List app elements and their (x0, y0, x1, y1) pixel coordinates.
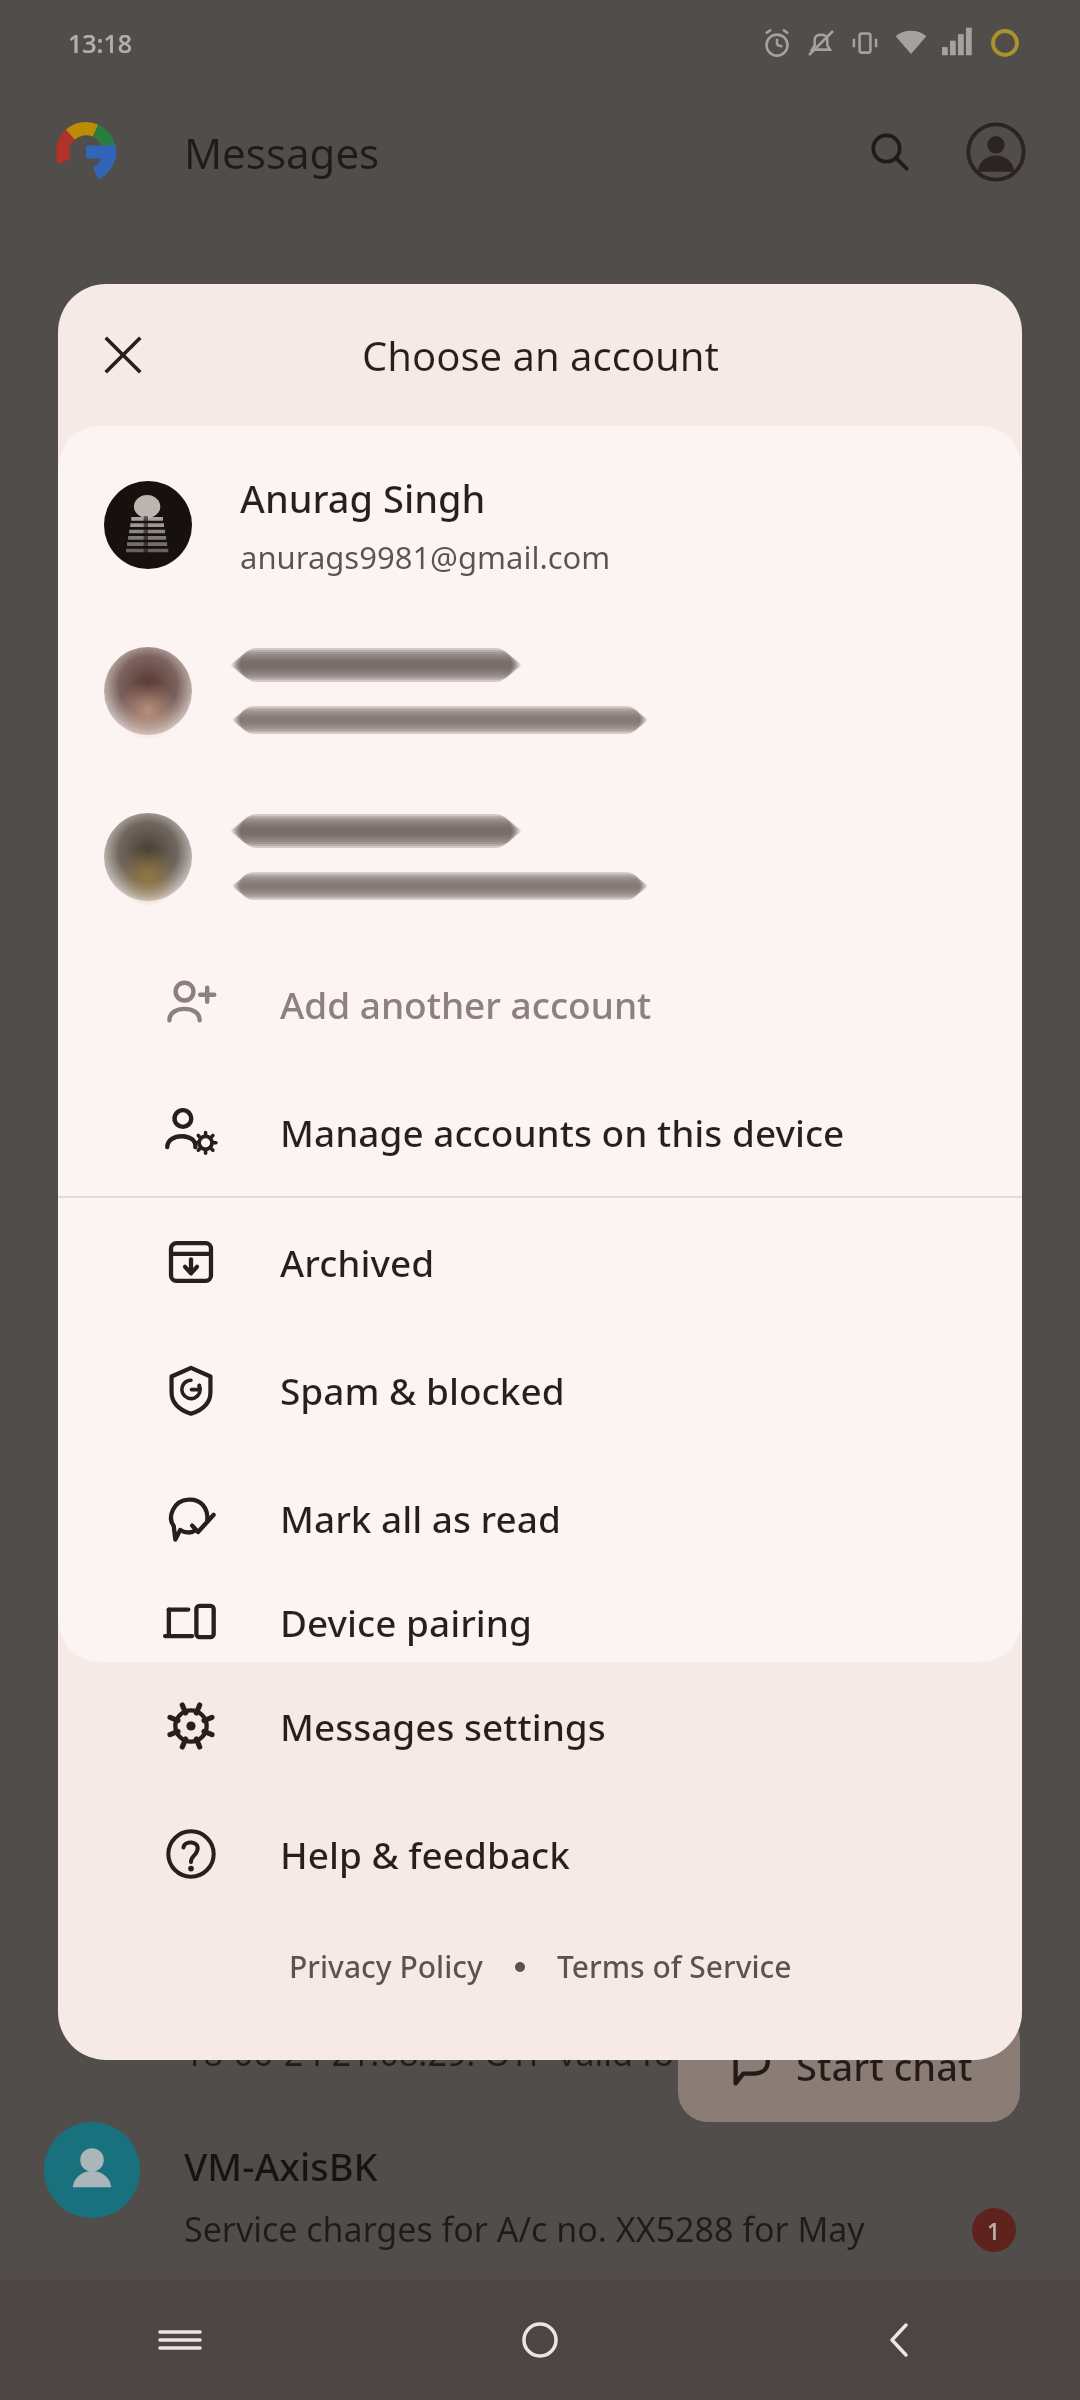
staticText: Spam & blocked (280, 1365, 565, 1415)
staticText: Start chat (796, 2040, 973, 2092)
button[interactable]: Back (720, 2280, 1080, 2400)
button[interactable]: Mark all as read (58, 1454, 1022, 1582)
button[interactable] (58, 774, 1022, 940)
button[interactable]: Add another account (58, 940, 1022, 1068)
button[interactable]: Anurag Singh (58, 442, 1022, 608)
button[interactable]: Home (360, 2280, 720, 2400)
staticText: Privacy Policy (289, 1946, 483, 1987)
button[interactable]: Account (956, 112, 1036, 192)
button[interactable]: Terms of Service (549, 1938, 800, 1995)
staticText: Terms of Service (557, 1946, 792, 1987)
staticText: Device pairing (280, 1597, 532, 1647)
staticText: on Axis Bank card XX2426 at Zepto on (184, 1972, 786, 2018)
button[interactable]: Help & feedback (58, 1790, 1022, 1918)
staticText: 1 (987, 2215, 1001, 2246)
staticText: Help & feedback (280, 1829, 570, 1879)
button[interactable]: Close (78, 310, 168, 400)
staticText: Add another account (280, 979, 652, 1029)
staticText: Anurag Singh (240, 472, 486, 524)
button[interactable]: Privacy Policy (281, 1938, 491, 1995)
button[interactable]: Manage accounts on this device (58, 1068, 1022, 1196)
staticText: VM-AxisBK (184, 2140, 378, 2192)
button[interactable]: Search (850, 112, 930, 192)
staticText: Archived (280, 1237, 435, 1287)
button[interactable]: Recent apps (0, 2280, 360, 2400)
staticText: 13:18 (68, 26, 133, 60)
staticText: Service charges for A/c no. XX5288 for M… (184, 2206, 865, 2252)
staticText: anurags9981@gmail.com (240, 536, 611, 578)
staticText: 18-06-24 21:08:29. OTP valid fo (184, 2030, 675, 2076)
staticText: Manage accounts on this device (280, 1107, 845, 1157)
staticText: Choose an account (362, 328, 719, 382)
button[interactable]: Archived (58, 1198, 1022, 1326)
staticText: Messages (184, 124, 380, 181)
button[interactable]: Messages settings (58, 1662, 1022, 1790)
staticText: Mark all as read (280, 1493, 561, 1543)
button[interactable] (58, 608, 1022, 774)
button[interactable]: Spam & blocked (58, 1326, 1022, 1454)
button[interactable]: Device pairing (58, 1582, 1022, 1662)
staticText: Messages settings (280, 1701, 606, 1751)
button[interactable] (44, 2122, 140, 2218)
button[interactable]: Start chat (678, 2010, 1020, 2122)
